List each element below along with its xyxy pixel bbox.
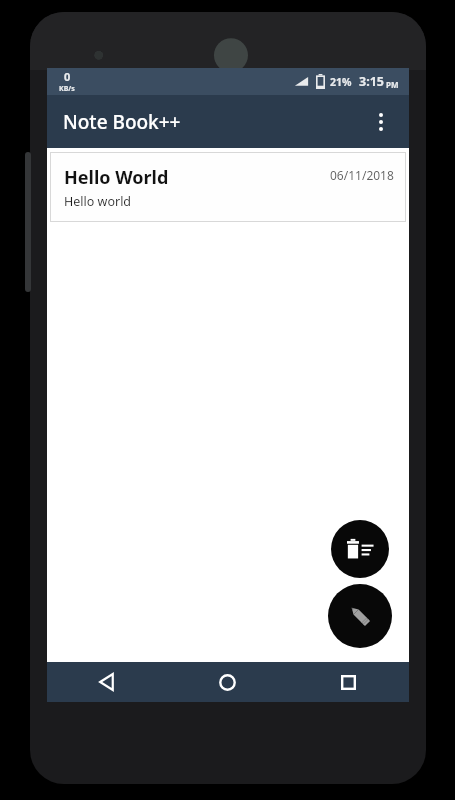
staticText: 0 — [64, 69, 71, 84]
button[interactable]: Home — [167, 662, 288, 702]
button[interactable]: Back — [47, 662, 167, 702]
staticText: PM — [386, 79, 399, 90]
staticText: KB/s — [59, 84, 75, 94]
staticText: 06/11/2018 — [330, 167, 394, 183]
staticText: 21% — [330, 75, 352, 89]
staticText: Note Book++ — [63, 109, 181, 135]
button[interactable]: More options — [359, 100, 403, 144]
staticText: 3:15 — [359, 73, 384, 90]
button[interactable]: New note — [328, 584, 392, 648]
staticText: Hello World — [64, 165, 169, 190]
button[interactable]: Hello World — [51, 153, 405, 221]
staticText: Hello world — [64, 193, 132, 210]
button[interactable]: Delete all notes — [331, 520, 389, 578]
button[interactable]: Recent apps — [288, 662, 409, 702]
